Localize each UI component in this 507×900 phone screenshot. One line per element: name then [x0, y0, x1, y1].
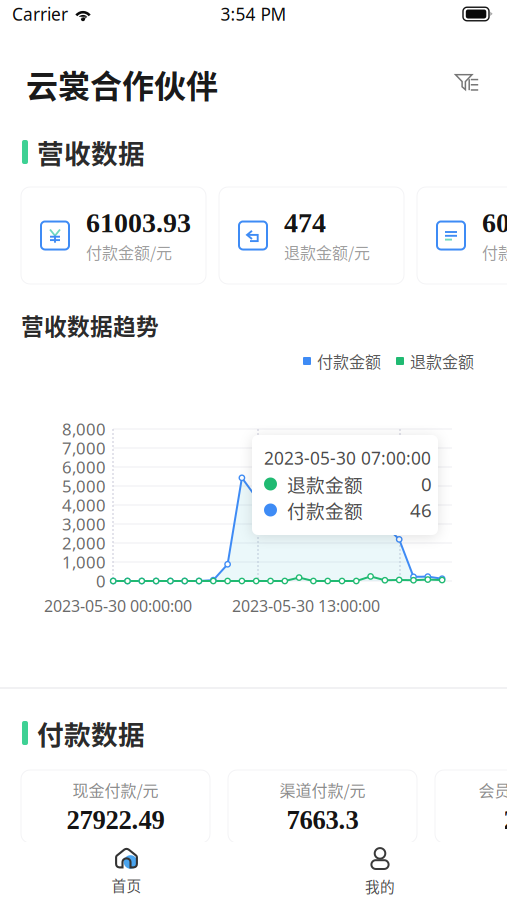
- staticText: 5,000: [62, 475, 106, 497]
- staticText: 我的: [365, 875, 395, 897]
- staticText: 474: [284, 207, 326, 238]
- staticText: 2541: [503, 805, 507, 835]
- staticText: 7663.3: [286, 805, 358, 835]
- staticText: 6,000: [62, 456, 106, 478]
- staticText: 退款金额: [287, 470, 363, 497]
- staticText: 3,000: [62, 513, 106, 535]
- button[interactable]: Filter: [453, 66, 489, 102]
- staticText: 付款金额: [287, 496, 363, 523]
- staticText: 现金付款/元: [72, 778, 158, 801]
- staticText: 4,000: [62, 494, 106, 516]
- staticText: 27922.49: [66, 805, 164, 835]
- staticText: 2023-05-30 13:00:00: [232, 595, 380, 617]
- staticText: 会员卡付款/元: [478, 778, 507, 801]
- button[interactable]: 我的: [253, 842, 507, 900]
- staticText: 3:54 PM: [220, 2, 286, 26]
- staticText: 46: [410, 497, 432, 523]
- staticText: 2,000: [62, 532, 106, 554]
- staticText: 付款数据: [37, 714, 145, 752]
- staticText: 营收数据趋势: [21, 309, 159, 341]
- staticText: 605: [482, 207, 507, 238]
- staticText: 2023-05-30 00:00:00: [44, 595, 192, 617]
- staticText: 0: [96, 570, 106, 592]
- staticText: 退款金额/元: [284, 240, 370, 264]
- staticText: 0: [421, 471, 432, 497]
- staticText: 退款金额: [410, 349, 474, 373]
- staticText: 营收数据: [37, 133, 145, 171]
- button[interactable]: 首页: [0, 842, 253, 900]
- staticText: 2023-05-30 07:00:00: [264, 446, 431, 470]
- staticText: 付款金额: [317, 349, 381, 373]
- staticText: 云裳合作伙伴: [26, 61, 218, 107]
- staticText: 61003.93: [86, 207, 191, 238]
- staticText: 8,000: [62, 418, 106, 440]
- staticText: 付款订单数: [482, 240, 507, 264]
- staticText: 付款金额/元: [86, 240, 172, 264]
- staticText: 渠道付款/元: [279, 778, 365, 801]
- staticText: 1,000: [62, 551, 106, 573]
- staticText: Carrier: [12, 2, 68, 26]
- staticText: 7,000: [62, 437, 106, 459]
- staticText: 首页: [111, 874, 141, 896]
